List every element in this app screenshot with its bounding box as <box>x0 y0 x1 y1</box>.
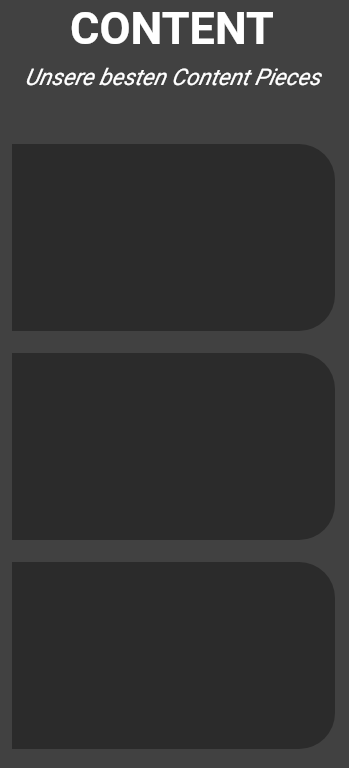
staticText: Unsere besten Content Pieces <box>0 64 345 91</box>
staticText: CONTENT <box>0 2 344 55</box>
